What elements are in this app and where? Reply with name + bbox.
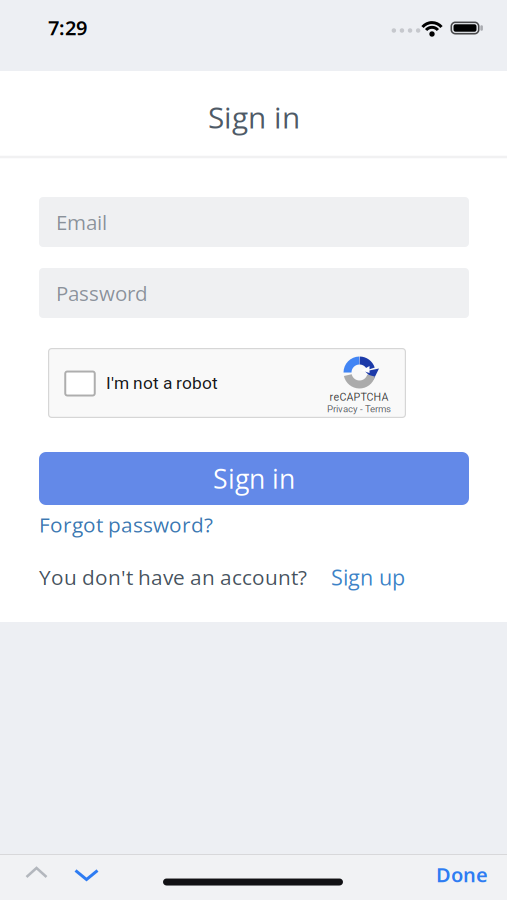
button[interactable] [25,866,48,878]
staticText: Sign in [208,97,300,137]
staticText: You don't have an account? [39,563,307,591]
button[interactable]: Email [39,197,469,247]
staticText: reCAPTCHA [329,391,388,403]
staticText: Forgot password? [39,510,213,539]
staticText: Done [436,861,488,888]
button[interactable]: I'm not a robot [48,348,406,418]
staticText: Password [56,279,148,307]
staticText: Sign up [331,562,405,592]
button[interactable]: Sign up [307,562,405,592]
staticText: Sign in [213,460,295,497]
button[interactable] [74,869,99,881]
staticText: 7:29 [48,14,87,41]
button[interactable]: Done [436,861,488,888]
button[interactable]: Sign in [39,452,469,505]
button[interactable]: Forgot password? [39,510,213,539]
button[interactable]: Password [39,268,469,318]
staticText: Privacy - Terms [327,403,391,415]
staticText: Email [56,208,107,236]
staticText: I'm not a robot [106,373,218,393]
